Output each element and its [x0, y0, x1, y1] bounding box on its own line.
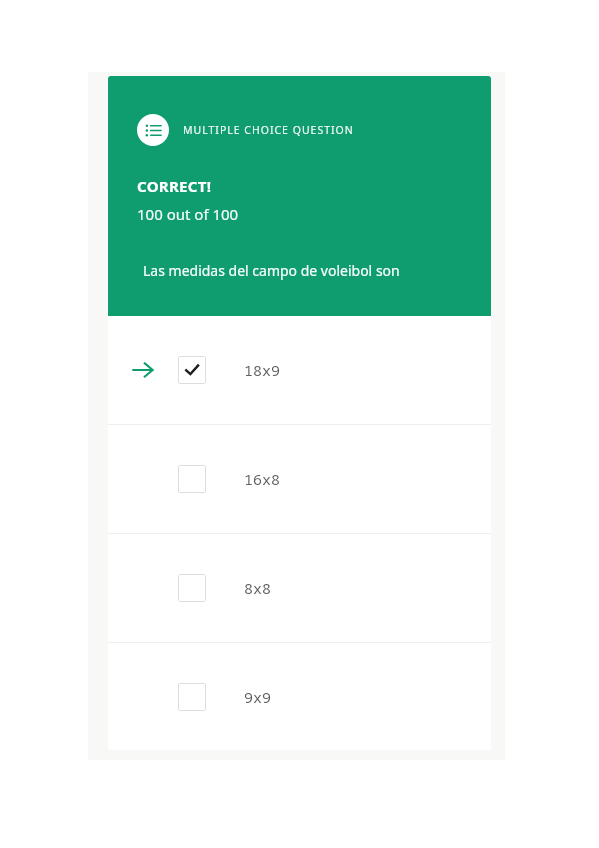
staticText: 18x9 — [244, 360, 281, 380]
button[interactable]: 8x8 — [108, 534, 491, 642]
button[interactable]: Your answer — [108, 316, 491, 424]
staticText: MULTIPLE CHOICE QUESTION — [183, 123, 354, 137]
staticText: 16x8 — [244, 469, 281, 489]
staticText: 8x8 — [244, 578, 272, 598]
other: Multiple choice question — [137, 114, 169, 146]
staticText: 100 out of 100 — [137, 204, 239, 224]
staticText: 9x9 — [244, 687, 272, 707]
staticText: Las medidas del campo de voleibol son — [143, 261, 463, 280]
button[interactable]: 16x8 — [108, 425, 491, 533]
staticText: CORRECT! — [137, 176, 212, 196]
button[interactable]: 9x9 — [108, 643, 491, 750]
other: Your answer — [132, 359, 154, 381]
